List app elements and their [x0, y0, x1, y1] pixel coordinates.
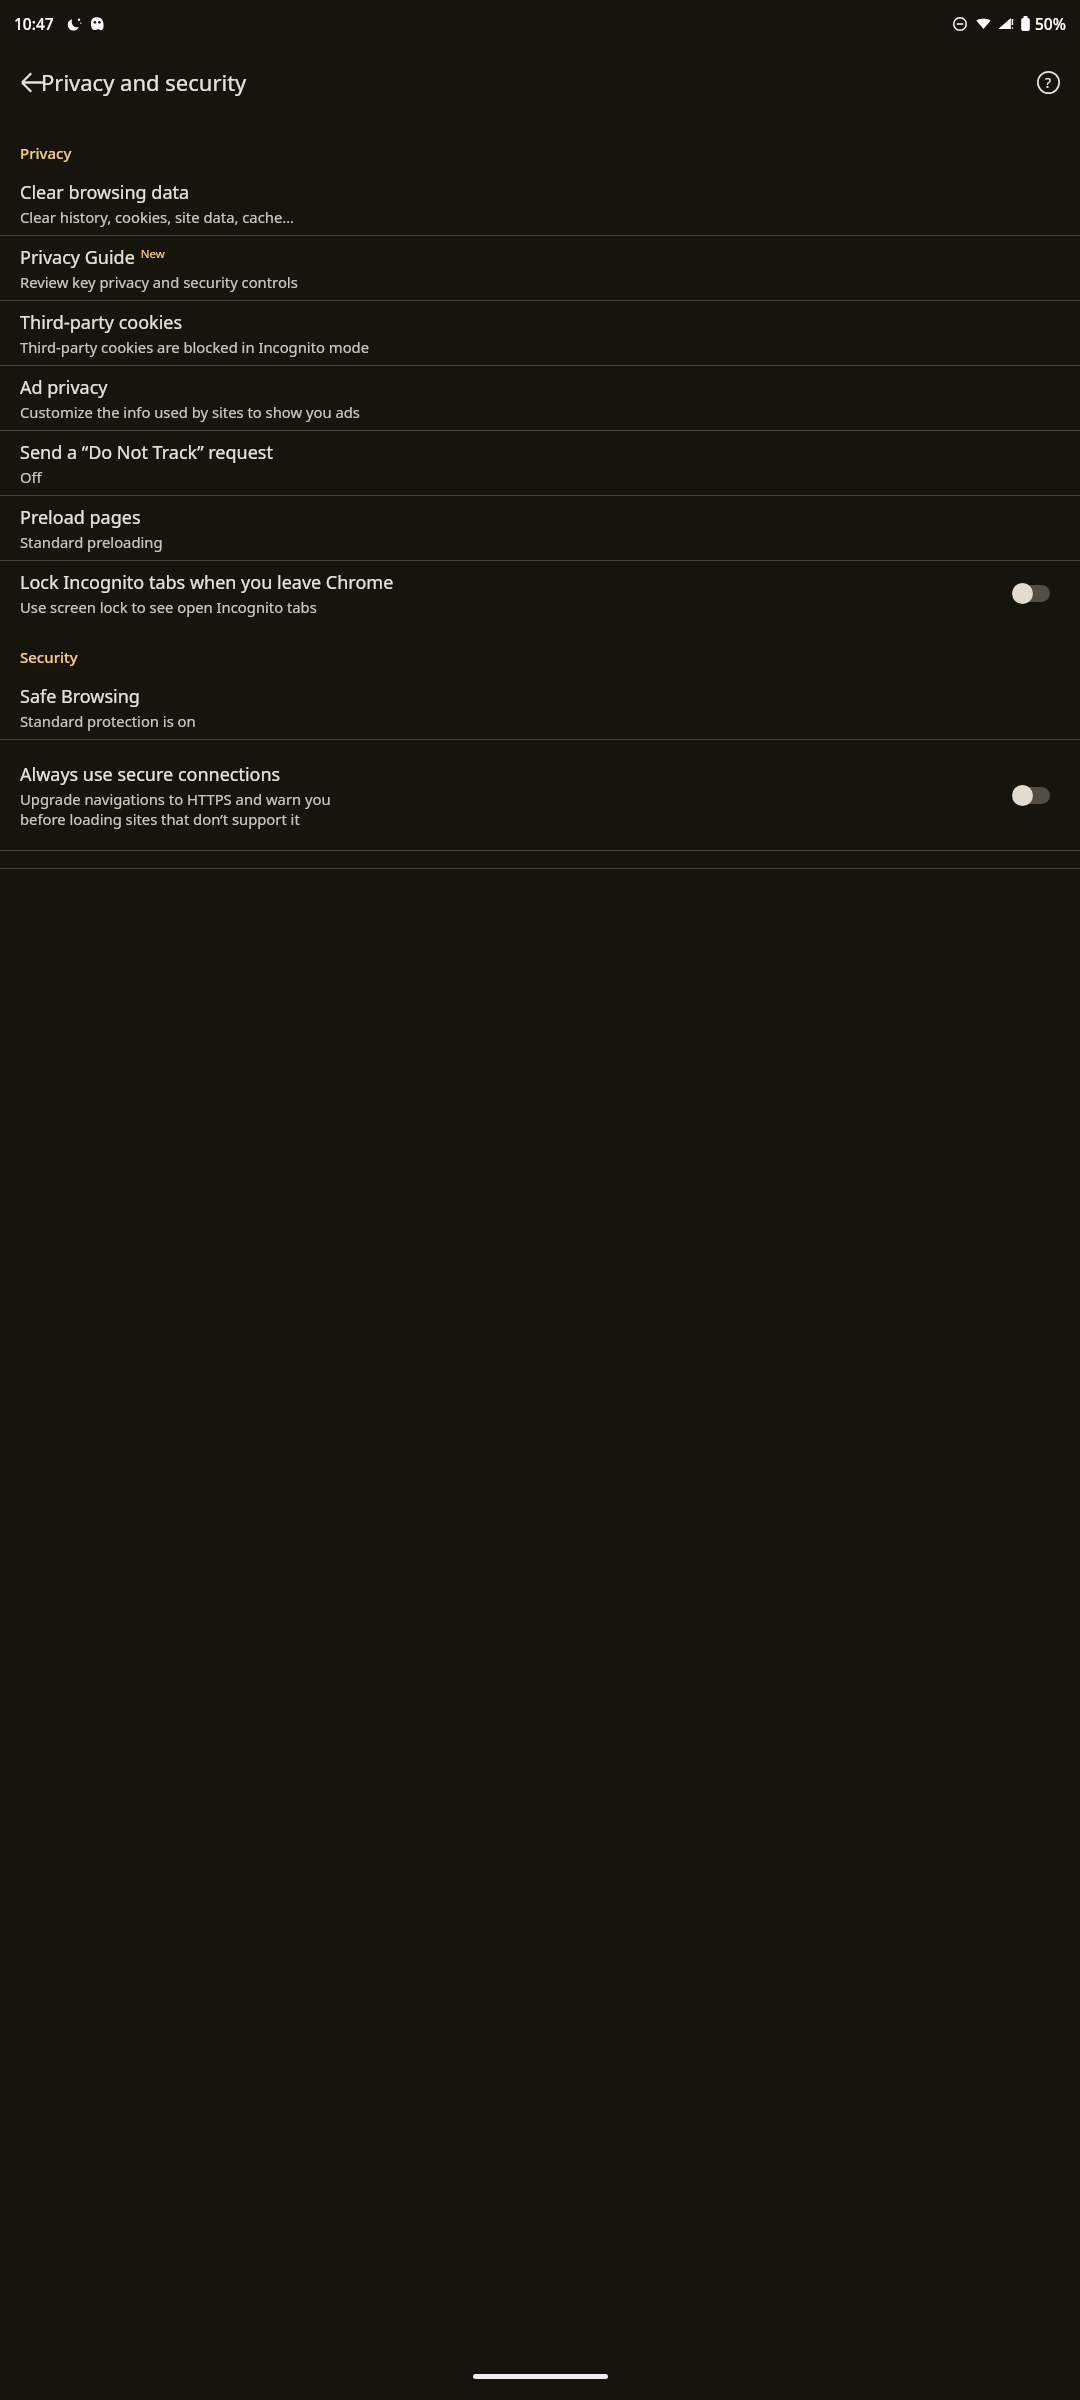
staticText: Standard preloading	[20, 532, 163, 552]
staticText: Security	[20, 647, 78, 667]
staticText: Privacy	[20, 143, 72, 163]
staticText: Privacy Guide New	[20, 245, 165, 270]
staticText: Lock Incognito tabs when you leave Chrom…	[20, 570, 394, 595]
staticText: Use screen lock to see open Incognito ta…	[20, 597, 317, 617]
staticText: Third-party cookies	[20, 310, 183, 335]
button[interactable]: Back	[4, 54, 60, 110]
button[interactable]: Privacy Guide New	[0, 236, 1080, 300]
staticText: Send a “Do Not Track” request	[20, 440, 273, 465]
staticText: Review key privacy and security controls	[20, 272, 298, 292]
button[interactable]: Always use secure connections	[0, 740, 1080, 850]
button[interactable]: Clear browsing data	[0, 171, 1080, 235]
button[interactable]: Toggle Lock Incognito tabs when you leav…	[1010, 573, 1062, 613]
staticText: Always use secure connections	[20, 762, 281, 787]
staticText: Standard protection is on	[20, 711, 196, 731]
staticText: Off	[20, 467, 42, 487]
button[interactable]: Help	[1022, 56, 1074, 108]
button[interactable]: Toggle Always use secure connections	[1010, 775, 1062, 815]
staticText: Safe Browsing	[20, 684, 140, 709]
button[interactable]: Preload pages	[0, 496, 1080, 560]
button[interactable]: Safe Browsing	[0, 675, 1080, 739]
button[interactable]: Third-party cookies	[0, 301, 1080, 365]
staticText: Clear browsing data	[20, 180, 190, 205]
staticText: Upgrade navigations to HTTPS and warn yo…	[20, 789, 331, 829]
staticText: Ad privacy	[20, 375, 108, 400]
staticText: Privacy and security	[41, 67, 247, 97]
staticText: Clear history, cookies, site data, cache…	[20, 207, 294, 227]
button[interactable]: Lock Incognito tabs when you leave Chrom…	[0, 561, 1080, 625]
staticText: Customize the info used by sites to show…	[20, 402, 360, 422]
staticText: ?	[1045, 73, 1052, 92]
staticText: 50%	[1035, 13, 1066, 34]
button[interactable]: Send a “Do Not Track” request	[0, 431, 1080, 495]
staticText: Third-party cookies are blocked in Incog…	[20, 337, 370, 357]
staticText: Preload pages	[20, 505, 141, 530]
button[interactable]: Ad privacy	[0, 366, 1080, 430]
staticText: 10:47	[14, 13, 54, 34]
